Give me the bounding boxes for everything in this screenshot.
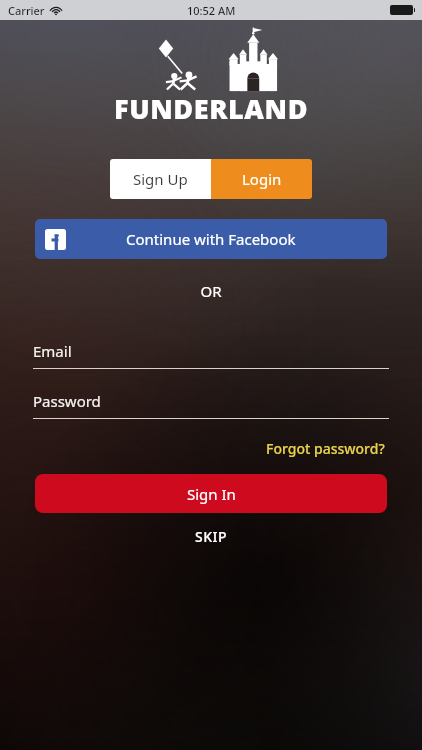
button[interactable]: Sign Up bbox=[110, 159, 211, 199]
staticText: Email bbox=[33, 341, 72, 361]
staticText: Forgot password? bbox=[266, 439, 385, 458]
button[interactable]: Forgot password? bbox=[264, 437, 387, 460]
staticText: Login bbox=[242, 169, 282, 189]
button[interactable]: SKIP bbox=[181, 523, 242, 550]
staticText: SKIP bbox=[195, 527, 228, 546]
staticText: Continue with Facebook bbox=[126, 229, 296, 249]
staticText: 10:52 AM bbox=[187, 3, 236, 18]
button[interactable]: Sign In bbox=[35, 474, 387, 513]
button[interactable]: Login bbox=[211, 159, 312, 199]
staticText: FUNDERLAND bbox=[114, 90, 309, 127]
staticText: Sign In bbox=[187, 484, 236, 504]
button[interactable]: Continue with Facebook bbox=[35, 219, 387, 259]
staticText: OR bbox=[0, 281, 422, 301]
staticText: Password bbox=[33, 391, 101, 411]
button[interactable]: Email bbox=[33, 341, 389, 369]
staticText: Sign Up bbox=[133, 169, 188, 189]
staticText: Carrier bbox=[8, 3, 45, 18]
button[interactable]: Password bbox=[33, 391, 389, 419]
